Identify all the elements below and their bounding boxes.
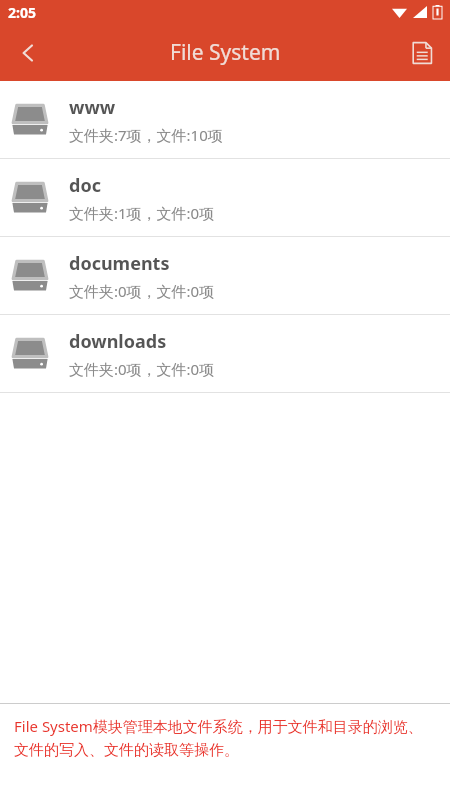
button[interactable]: downloads: [0, 315, 450, 392]
staticText: 文件夹:1项，文件:0项: [69, 203, 215, 223]
staticText: 文件夹:0项，文件:0项: [69, 359, 215, 379]
button[interactable]: documents: [0, 237, 450, 314]
staticText: File System: [170, 38, 281, 67]
staticText: 2:05: [8, 3, 36, 22]
button[interactable]: New file: [394, 25, 450, 81]
button[interactable]: Back: [0, 25, 56, 81]
staticText: 文件夹:0项，文件:0项: [69, 281, 215, 301]
staticText: File System模块管理本地文件系统，用于文件和目录的浏览、文件的写入、文…: [14, 716, 436, 760]
button[interactable]: www: [0, 81, 450, 158]
staticText: 文件夹:7项，文件:10项: [69, 125, 223, 145]
button[interactable]: doc: [0, 159, 450, 236]
staticText: documents: [69, 251, 170, 276]
staticText: doc: [69, 173, 101, 198]
staticText: downloads: [69, 329, 167, 354]
staticText: www: [69, 95, 116, 120]
